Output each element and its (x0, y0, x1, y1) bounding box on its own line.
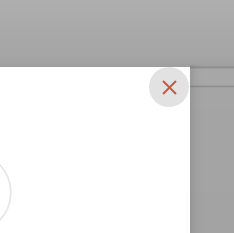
button[interactable]: Dismiss (0, 0, 234, 233)
button[interactable]: Close (149, 67, 189, 107)
